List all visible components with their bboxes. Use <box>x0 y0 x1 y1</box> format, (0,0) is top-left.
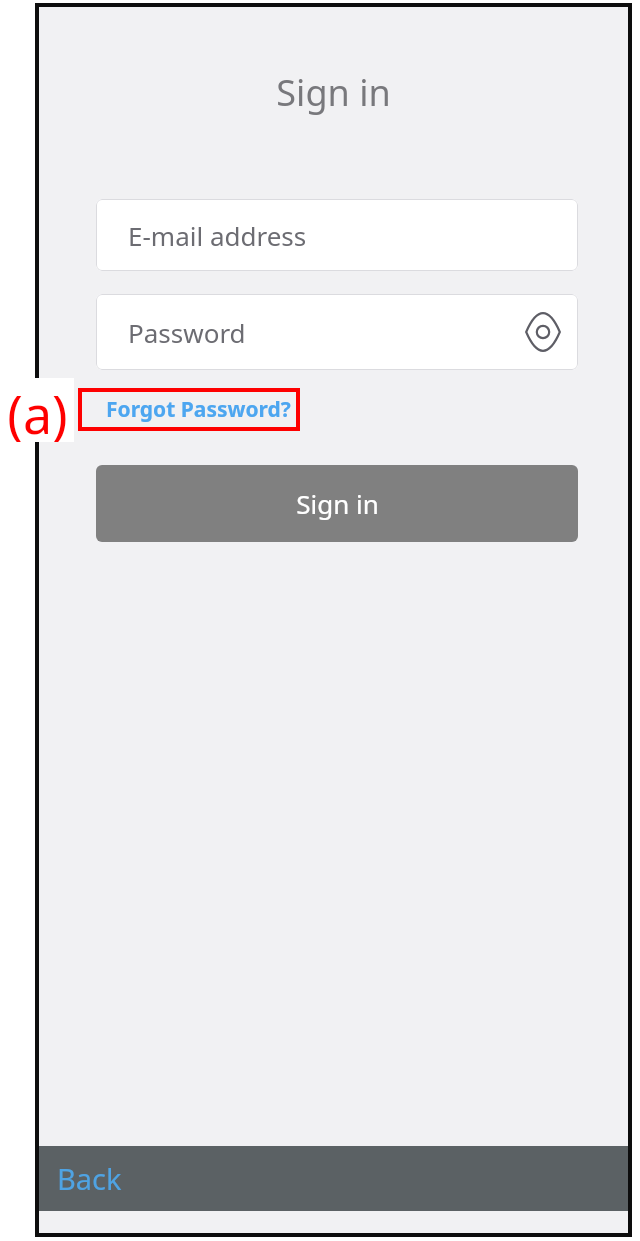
staticText: Sign in <box>276 68 391 116</box>
button[interactable]: Password <box>96 294 578 370</box>
button[interactable]: E-mail address <box>96 199 578 271</box>
button[interactable]: Show password <box>519 308 567 356</box>
staticText: Sign in <box>296 486 379 521</box>
staticText: (a) <box>7 378 68 442</box>
staticText: E-mail address <box>128 218 307 253</box>
staticText: Forgot Password? <box>106 395 291 424</box>
staticText: Password <box>128 315 246 350</box>
button[interactable]: Forgot Password? <box>96 392 284 426</box>
button[interactable]: Sign in <box>96 465 578 542</box>
button[interactable]: Back <box>47 1146 147 1211</box>
staticText: Back <box>57 1159 122 1198</box>
